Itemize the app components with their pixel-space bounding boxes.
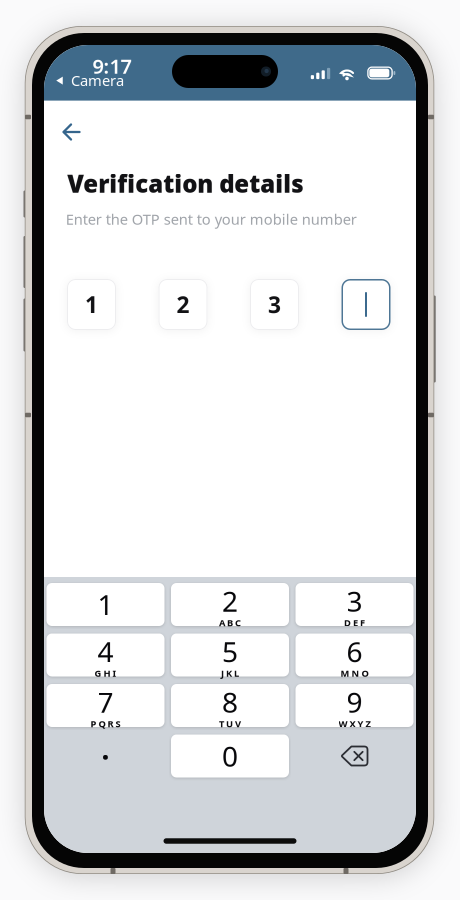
staticText: D E F bbox=[344, 616, 365, 629]
staticText: W X Y Z bbox=[338, 717, 370, 730]
staticText: 7 bbox=[97, 683, 113, 720]
staticText: M N O bbox=[340, 667, 368, 679]
staticText: 9:17 bbox=[92, 53, 131, 79]
staticText: 1 bbox=[97, 586, 113, 623]
button[interactable]: 2 bbox=[171, 583, 289, 626]
button[interactable]: OTP digit 3 bbox=[250, 279, 299, 330]
button[interactable]: OTP digit 1 bbox=[67, 279, 116, 330]
staticText: 9 bbox=[346, 683, 362, 720]
button[interactable]: OTP digit 4, editing bbox=[341, 279, 390, 330]
staticText: Verification details bbox=[67, 168, 303, 199]
button[interactable]: 5 bbox=[171, 633, 289, 676]
button[interactable]: 0 bbox=[171, 734, 289, 777]
staticText: J K L bbox=[221, 667, 239, 679]
staticText: 6 bbox=[346, 633, 362, 670]
staticText: Camera bbox=[71, 70, 124, 90]
button[interactable]: 1 bbox=[46, 583, 164, 626]
button[interactable]: 9 bbox=[295, 684, 413, 727]
staticText: 0 bbox=[222, 737, 238, 775]
staticText: A B C bbox=[219, 616, 241, 629]
staticText: 5 bbox=[222, 633, 238, 670]
button[interactable]: Delete bbox=[295, 734, 413, 777]
staticText: G H I bbox=[94, 667, 116, 679]
staticText: . bbox=[101, 730, 109, 768]
staticText: 2 bbox=[176, 289, 189, 319]
staticText: T U V bbox=[219, 717, 241, 730]
staticText: Enter the OTP sent to your mobile number bbox=[66, 209, 357, 229]
staticText: 4 bbox=[97, 633, 113, 670]
button[interactable]: 3 bbox=[295, 583, 413, 626]
button[interactable]: 4 bbox=[46, 633, 164, 676]
staticText: P Q R S bbox=[90, 717, 120, 730]
button[interactable]: 6 bbox=[295, 633, 413, 676]
staticText: 8 bbox=[222, 683, 238, 720]
staticText: 3 bbox=[346, 582, 362, 619]
staticText: 1 bbox=[85, 289, 98, 319]
staticText: 2 bbox=[222, 582, 238, 619]
button[interactable]: Back bbox=[48, 110, 94, 154]
staticText: 3 bbox=[268, 289, 281, 319]
button[interactable]: 8 bbox=[171, 684, 289, 727]
button[interactable]: OTP digit 2 bbox=[158, 279, 207, 330]
button[interactable]: 7 bbox=[46, 684, 164, 727]
button[interactable]: Period bbox=[46, 734, 164, 777]
